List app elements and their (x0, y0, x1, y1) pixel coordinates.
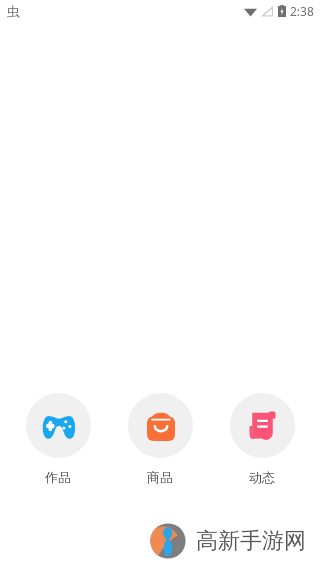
button[interactable]: 动态 (218, 393, 306, 485)
staticText: 高新手游网 (196, 527, 306, 555)
staticText: 动态 (249, 469, 275, 485)
staticText: 虫 (7, 3, 20, 19)
button[interactable]: 作品 (14, 393, 102, 485)
staticText: 作品 (45, 469, 71, 485)
button[interactable]: 商品 (116, 393, 204, 485)
staticText: 商品 (147, 469, 173, 485)
staticText: 2:38 (290, 3, 314, 19)
